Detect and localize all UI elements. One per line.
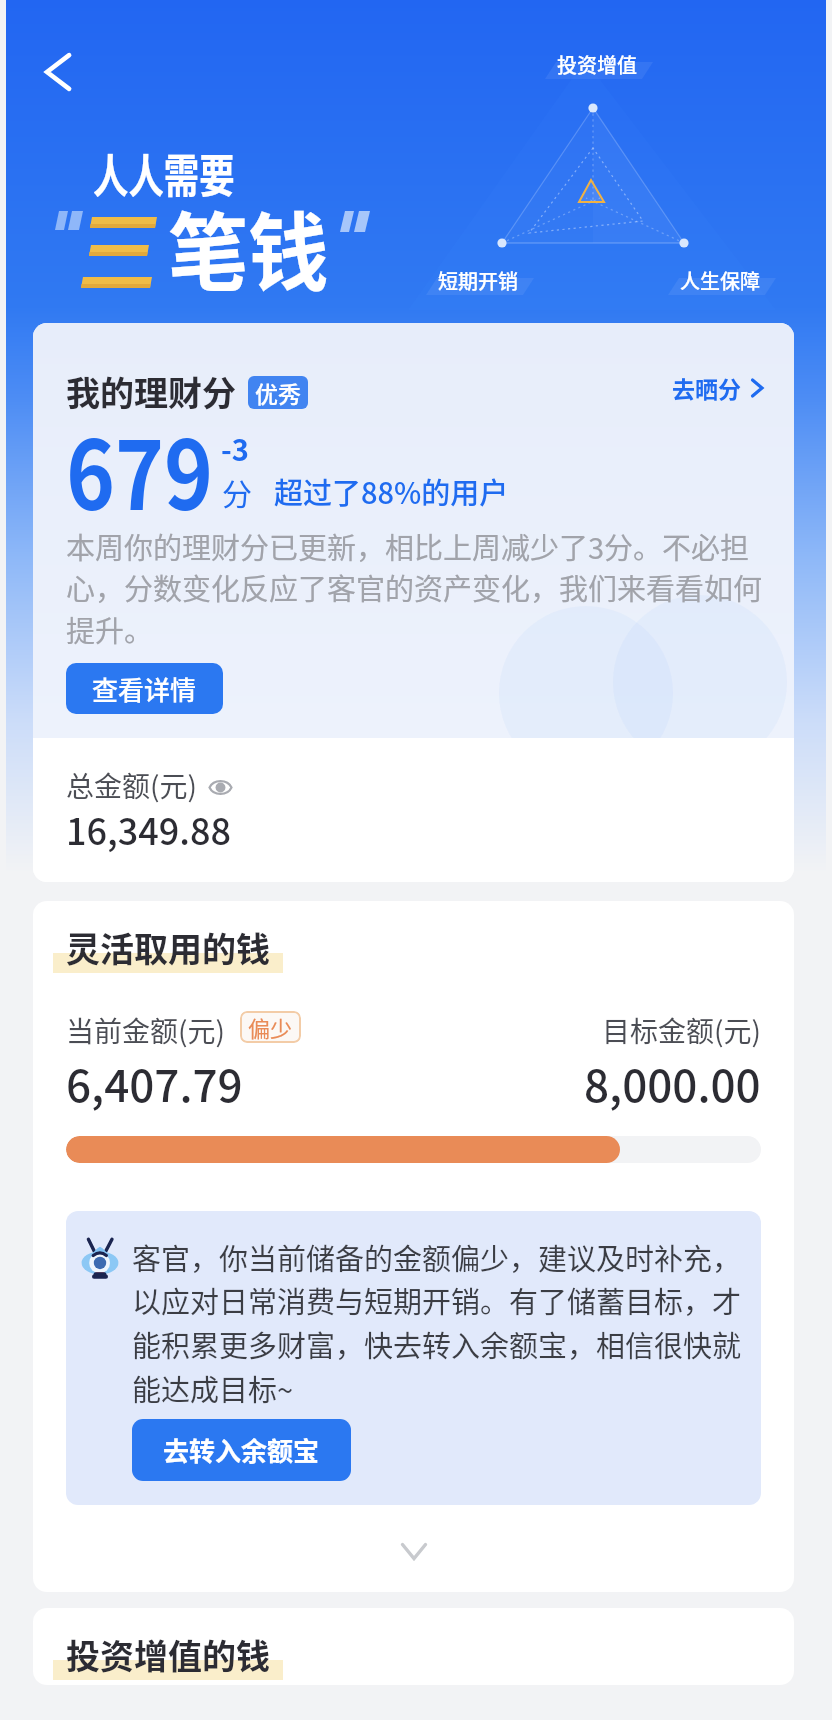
staticText: 人人需要 <box>93 139 235 206</box>
staticText: -3 <box>221 427 249 469</box>
staticText: 6,407.79 <box>66 1051 243 1115</box>
staticText: 16,349.88 <box>66 803 232 855</box>
button[interactable]: 查看详情 <box>66 663 223 714</box>
button[interactable]: Back <box>36 43 82 101</box>
staticText: 总金额(元) <box>66 765 197 806</box>
staticText: 客官，你当前储备的金额偏少，建议及时补充，以应对日常消费与短期开销。有了储蓄目标… <box>132 1236 757 1409</box>
staticText: 偏少 <box>248 1011 293 1043</box>
staticText: 投资增值的钱 <box>66 1630 270 1679</box>
staticText: 我的理财分 <box>66 367 236 416</box>
button[interactable]: 去晒分 <box>672 371 764 404</box>
staticText: 优秀 <box>255 376 301 409</box>
staticText: 目标金额(元) <box>602 1010 761 1051</box>
staticText: 去转入余额宝 <box>163 1431 320 1469</box>
staticText: 分 <box>222 470 252 513</box>
staticText: 本周你的理财分已更新，相比上周减少了3分。不必担心，分数变化反应了客官的资产变化… <box>66 525 774 651</box>
staticText: 笔钱 <box>168 185 330 308</box>
staticText: 679 <box>66 400 214 538</box>
staticText: 短期开销 <box>438 266 518 295</box>
button[interactable]: 去转入余额宝 <box>132 1419 351 1481</box>
staticText: 8,000.00 <box>584 1051 761 1115</box>
staticText: 当前金额(元) <box>66 1010 225 1051</box>
staticText: 查看详情 <box>92 670 197 708</box>
staticText: 去晒分 <box>672 371 741 404</box>
staticText: 超过了88%的用户 <box>274 470 509 512</box>
staticText: 灵活取用的钱 <box>66 923 270 972</box>
staticText: 人生保障 <box>680 266 760 295</box>
staticText: 投资增值 <box>557 50 637 79</box>
